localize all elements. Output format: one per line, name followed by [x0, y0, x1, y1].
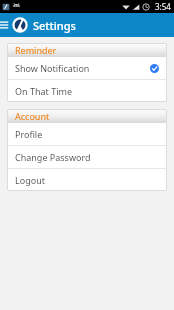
button[interactable]: Profile: [7, 123, 167, 145]
button[interactable]: Open navigation drawer: [0, 13, 9, 37]
staticText: Account: [15, 110, 50, 122]
button[interactable]: On That Time: [7, 80, 167, 102]
staticText: Logout: [15, 174, 159, 186]
staticText: On That Time: [15, 85, 159, 97]
staticText: Show Notification: [15, 62, 150, 74]
staticText: 3:54: [155, 1, 171, 12]
button[interactable]: Show Notification: [7, 57, 167, 79]
staticText: Reminder: [15, 44, 57, 56]
staticText: Change Password: [15, 151, 159, 163]
staticText: Settings: [33, 18, 76, 33]
staticText: Profile: [15, 128, 159, 140]
button[interactable]: Change Password: [7, 146, 167, 168]
button[interactable]: Logout: [7, 169, 167, 191]
